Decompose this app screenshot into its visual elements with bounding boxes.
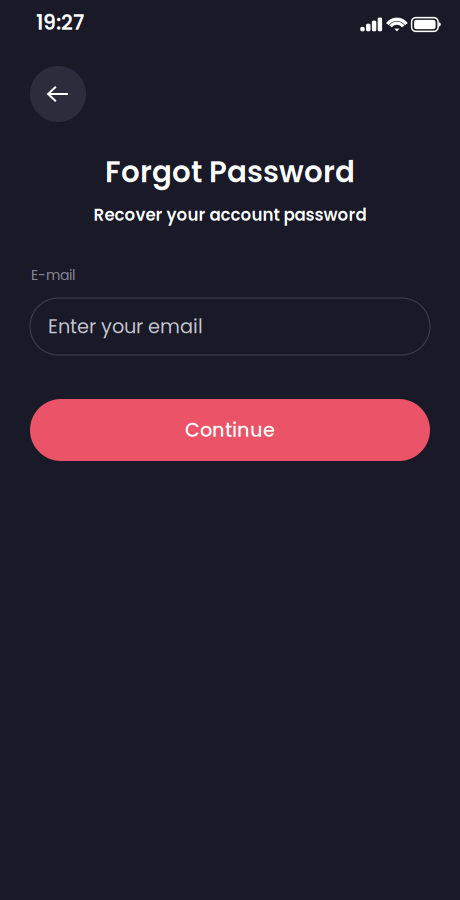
button[interactable]: Enter your email: [30, 298, 430, 355]
staticText: Forgot Password: [105, 151, 355, 193]
staticText: E-mail: [31, 265, 75, 285]
staticText: 19:27: [36, 8, 84, 37]
button[interactable]: Back: [30, 66, 86, 122]
button[interactable]: Continue: [30, 399, 430, 461]
staticText: Enter your email: [48, 313, 203, 340]
staticText: Recover your account password: [93, 203, 366, 227]
staticText: Continue: [185, 416, 275, 444]
